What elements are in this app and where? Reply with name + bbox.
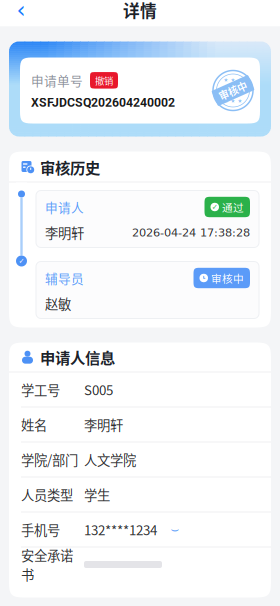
- staticText: 李明轩: [84, 415, 123, 434]
- button[interactable]: 返回: [8, 0, 34, 25]
- staticText: ✓: [18, 257, 24, 265]
- staticText: 132****1234: [84, 520, 157, 539]
- staticText: 手机号: [21, 520, 60, 539]
- staticText: 赵敏: [45, 294, 71, 313]
- staticText: 申请人信息: [40, 346, 115, 368]
- staticText: 通过: [222, 199, 244, 215]
- staticText: ‹: [16, 0, 25, 23]
- staticText: 2026-04-24 17:38:28: [132, 226, 250, 239]
- staticText: 审核中: [211, 270, 244, 286]
- staticText: 学生: [84, 485, 110, 504]
- staticText: 审核中: [218, 83, 248, 98]
- staticText: S005: [84, 380, 113, 399]
- staticText: 李明轩: [45, 223, 84, 242]
- staticText: ★ ★ ★: [223, 98, 242, 104]
- staticText: 人员类型: [21, 485, 73, 504]
- staticText: 申请单号: [31, 71, 83, 89]
- staticText: ★ ★ ★: [223, 77, 242, 83]
- staticText: 安全承诺书: [21, 545, 73, 584]
- staticText: 撤销: [95, 74, 113, 87]
- staticText: 学院/部门: [21, 450, 78, 469]
- staticText: ⌣: [170, 523, 179, 536]
- staticText: ✓: [212, 203, 218, 211]
- staticText: XSFJDCSQ202604240002: [31, 95, 175, 110]
- staticText: 学工号: [21, 380, 60, 399]
- button[interactable]: 显示手机号: [167, 522, 183, 536]
- staticText: 申请人: [45, 198, 84, 216]
- staticText: 辅导员: [45, 269, 84, 287]
- staticText: 人文学院: [84, 450, 136, 469]
- staticText: 详情: [123, 0, 157, 22]
- staticText: 审核历史: [40, 156, 100, 178]
- staticText: 姓名: [21, 415, 47, 434]
